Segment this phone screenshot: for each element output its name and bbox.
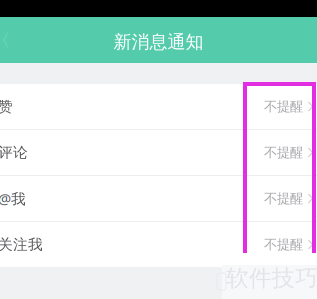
button[interactable]: Back	[0, 17, 12, 63]
staticText: @我	[0, 188, 26, 208]
staticText: 赞	[0, 97, 13, 116]
staticText: 不提醒	[264, 144, 303, 161]
staticText: 不提醒	[264, 190, 303, 207]
staticText: 软件技巧	[226, 264, 317, 293]
button[interactable]: 关注我	[0, 222, 317, 267]
button[interactable]: @我	[0, 176, 317, 221]
button[interactable]: 赞	[0, 84, 317, 129]
staticText: 关注我	[0, 235, 43, 254]
staticText: 评论	[0, 143, 28, 162]
staticText: 不提醒	[264, 98, 303, 115]
staticText: 新消息通知	[113, 31, 203, 53]
button[interactable]: 评论	[0, 130, 317, 175]
staticText: 不提醒	[264, 236, 303, 253]
